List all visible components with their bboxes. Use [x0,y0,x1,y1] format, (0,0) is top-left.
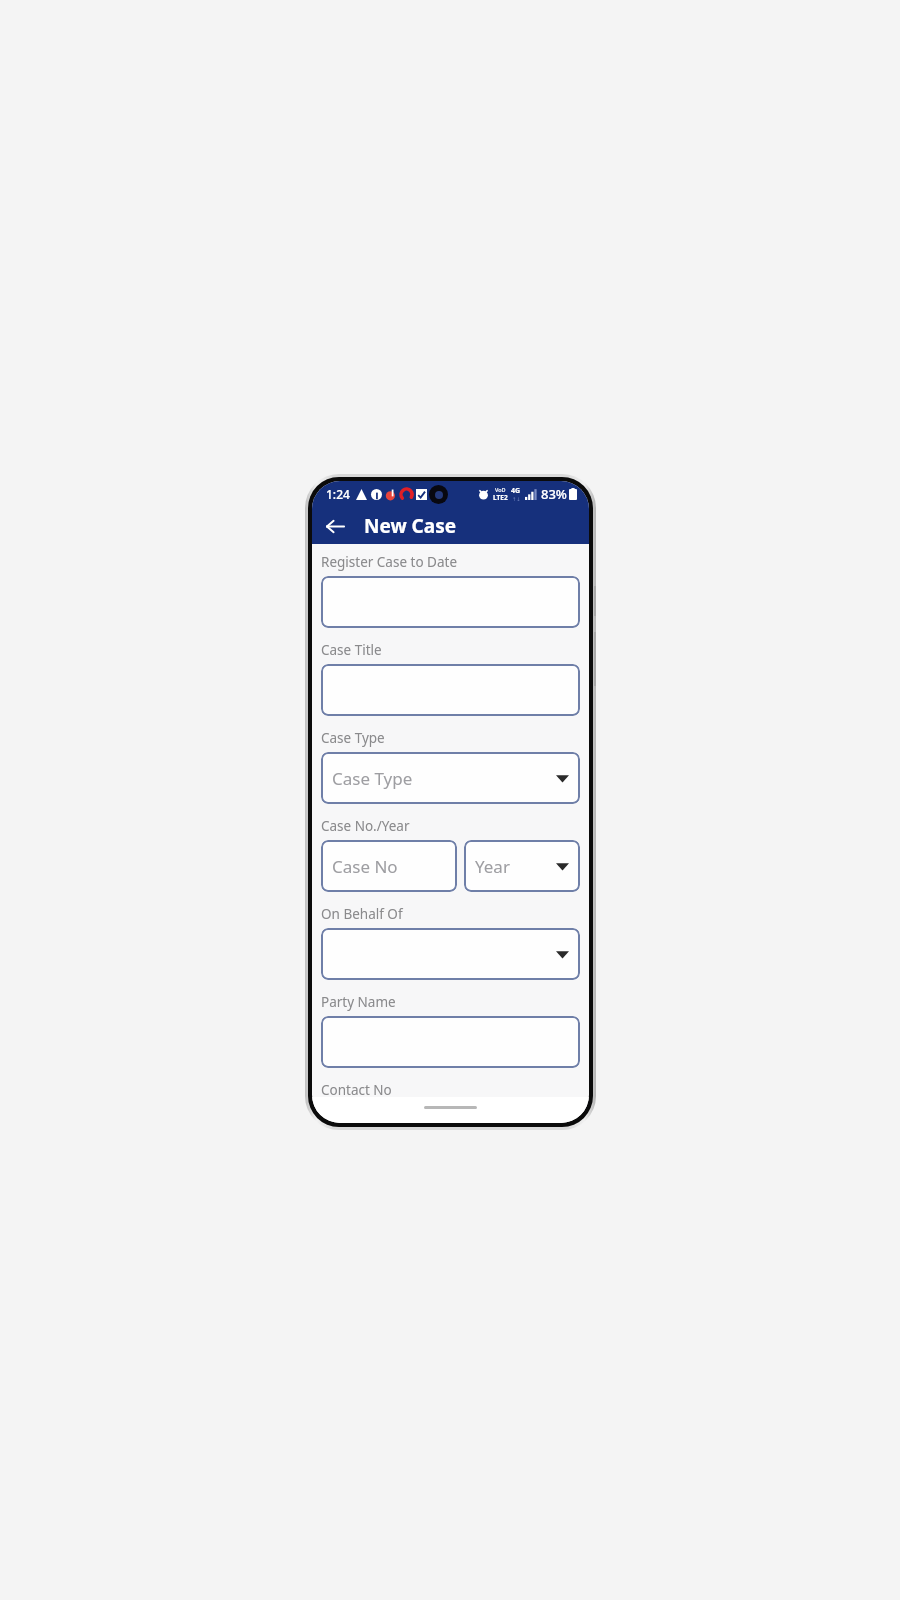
staticText: VoD [495,486,506,493]
button[interactable]: Year [464,840,580,892]
staticText: Case Type [332,767,413,790]
staticText: 1:24 [326,486,350,502]
staticText: New Case [364,513,457,539]
staticText: Case Title [321,641,382,659]
button[interactable] [321,664,580,716]
staticText: Party Name [321,993,396,1011]
button[interactable]: Case Type [321,752,580,804]
staticText: Contact No [321,1081,392,1097]
staticText: 83% [541,485,567,503]
staticText: On Behalf Of [321,905,403,923]
staticText: Year [475,855,510,878]
button[interactable] [321,576,580,628]
button[interactable]: Back [318,509,352,543]
button[interactable]: Case No [321,840,457,892]
staticText: LTE2 [493,493,508,502]
staticText: Case No [332,855,398,878]
staticText: Case No./Year [321,817,410,835]
staticText: Case Type [321,729,385,747]
button[interactable] [321,1016,580,1068]
staticText: Register Case to Date [321,553,457,571]
staticText: 4G [511,486,521,496]
button[interactable] [321,928,580,980]
staticText: ↑↓ [512,496,521,502]
